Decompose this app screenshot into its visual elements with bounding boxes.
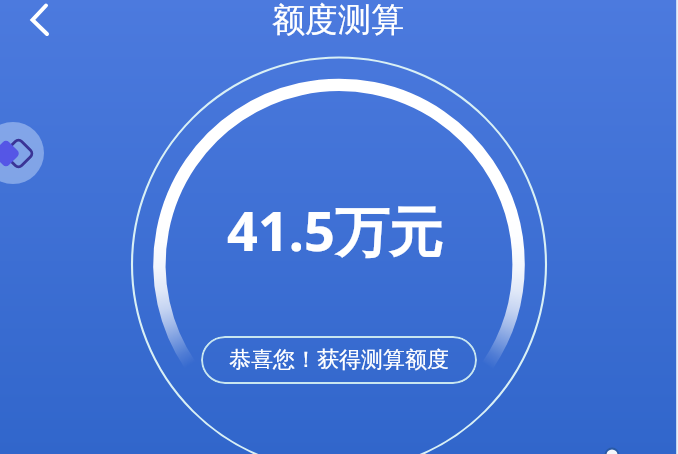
button[interactable]: Back <box>14 0 62 48</box>
staticText: 额度测算 <box>272 0 404 41</box>
staticText: 41.5万元 <box>227 193 443 267</box>
button[interactable]: Customer service <box>0 122 44 184</box>
staticText: 恭喜您！获得测算额度 <box>229 346 449 374</box>
button[interactable]: 恭喜您！获得测算额度 <box>201 336 477 384</box>
